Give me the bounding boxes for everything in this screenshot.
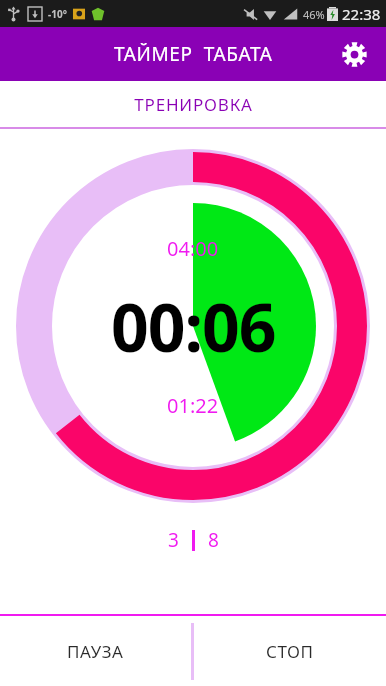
staticText: 01:22 (167, 392, 219, 419)
staticText: -10° (48, 7, 67, 21)
staticText: 46% (303, 7, 325, 22)
button[interactable]: ТРЕНИРОВКА (0, 81, 386, 127)
staticText: ТАЙМЕР ТАБАТА (114, 41, 273, 67)
staticText: 22:38 (342, 4, 381, 24)
button[interactable]: Settings (334, 34, 374, 74)
staticText: 04:00 (167, 235, 219, 262)
staticText: 8 (208, 527, 219, 553)
staticText: ПАУЗА (67, 640, 124, 663)
button[interactable]: 3 (168, 527, 219, 553)
button[interactable]: ПАУЗА (0, 616, 191, 686)
button[interactable]: СТОП (194, 616, 386, 686)
staticText: 3 (168, 527, 179, 553)
staticText: СТОП (266, 640, 314, 663)
staticText: ТРЕНИРОВКА (134, 93, 253, 116)
staticText: 00:06 (111, 281, 276, 371)
